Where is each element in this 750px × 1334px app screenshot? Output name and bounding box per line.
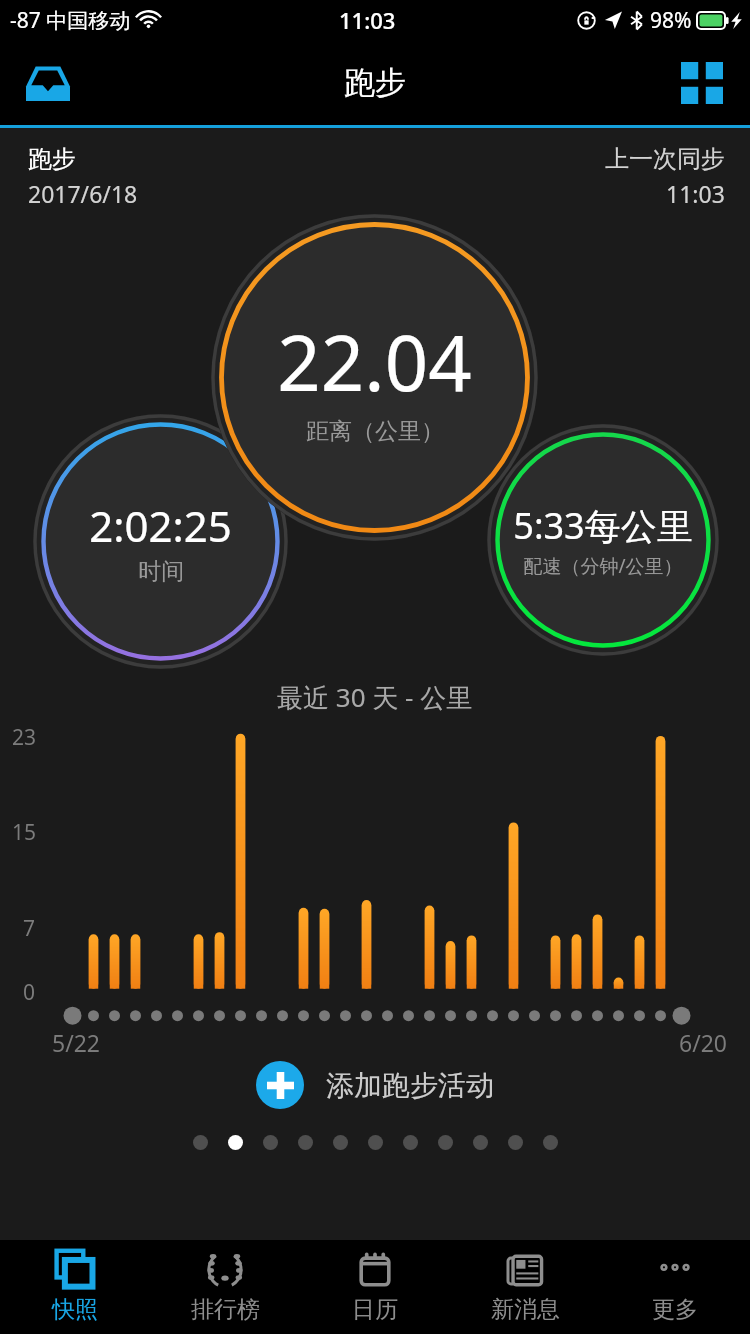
staticText: 6/20 <box>679 1027 728 1058</box>
staticText: 5/22 <box>52 1027 101 1058</box>
staticText: 跑步 <box>28 144 76 174</box>
staticText: 11:03 <box>666 178 725 209</box>
button[interactable]: 新消息 <box>450 1240 600 1334</box>
staticText: 7 <box>23 914 36 943</box>
staticText: 日历 <box>352 1295 398 1324</box>
button[interactable]: 网格视图 <box>670 51 734 115</box>
staticText: 11:03 <box>339 5 396 35</box>
button[interactable]: 日历 <box>300 1240 450 1334</box>
staticText: 上一次同步 <box>605 144 725 174</box>
staticText: 新消息 <box>491 1295 560 1324</box>
button[interactable]: 2:02:25 <box>33 414 288 669</box>
staticText: 更多 <box>652 1295 698 1324</box>
button[interactable]: 收件箱 <box>16 51 80 115</box>
staticText: 98% <box>650 6 692 35</box>
staticText: 22.04 <box>277 310 472 414</box>
staticText: 2017/6/18 <box>28 178 138 209</box>
button[interactable]: 快照 <box>0 1240 150 1334</box>
staticText: 5:33每公里 <box>513 501 693 550</box>
staticText: 15 <box>12 818 37 847</box>
button[interactable]: 更多 <box>600 1240 750 1334</box>
staticText: 0 <box>23 978 36 1007</box>
staticText: 快照 <box>52 1295 98 1324</box>
staticText: 排行榜 <box>191 1295 260 1324</box>
button[interactable]: 22.04 <box>211 214 538 541</box>
staticText: 配速（分钟/公里） <box>523 553 683 579</box>
button[interactable]: 5:33每公里 <box>487 424 719 656</box>
button[interactable]: 添加跑步活动 <box>244 1055 506 1115</box>
staticText: 最近 30 天 - 公里 <box>277 679 473 715</box>
staticText: -87 中国移动 <box>10 6 131 35</box>
button[interactable]: 排行榜 <box>150 1240 300 1334</box>
staticText: 时间 <box>138 557 184 586</box>
staticText: 距离（公里） <box>306 417 444 446</box>
staticText: 添加跑步活动 <box>326 1068 494 1103</box>
staticText: 跑步 <box>344 63 406 102</box>
staticText: 2:02:25 <box>89 497 232 554</box>
staticText: 23 <box>12 723 37 752</box>
